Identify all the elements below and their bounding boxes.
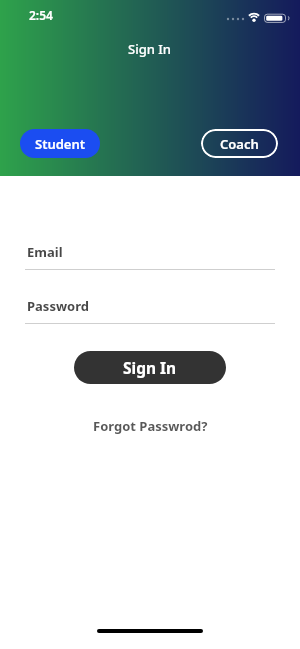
staticText: Password — [27, 297, 89, 315]
staticText: Student — [35, 135, 86, 153]
staticText: Sign In — [128, 40, 172, 58]
button[interactable]: Sign In — [74, 351, 226, 384]
staticText: Sign In — [123, 357, 177, 378]
button[interactable]: Forgot Passwrod? — [93, 417, 208, 435]
button[interactable]: Coach — [201, 129, 278, 158]
staticText: Email — [27, 243, 63, 261]
button[interactable]: Student — [20, 129, 100, 158]
staticText: Forgot Passwrod? — [93, 417, 208, 435]
staticText: 2:54 — [29, 7, 53, 23]
staticText: Coach — [220, 135, 259, 153]
